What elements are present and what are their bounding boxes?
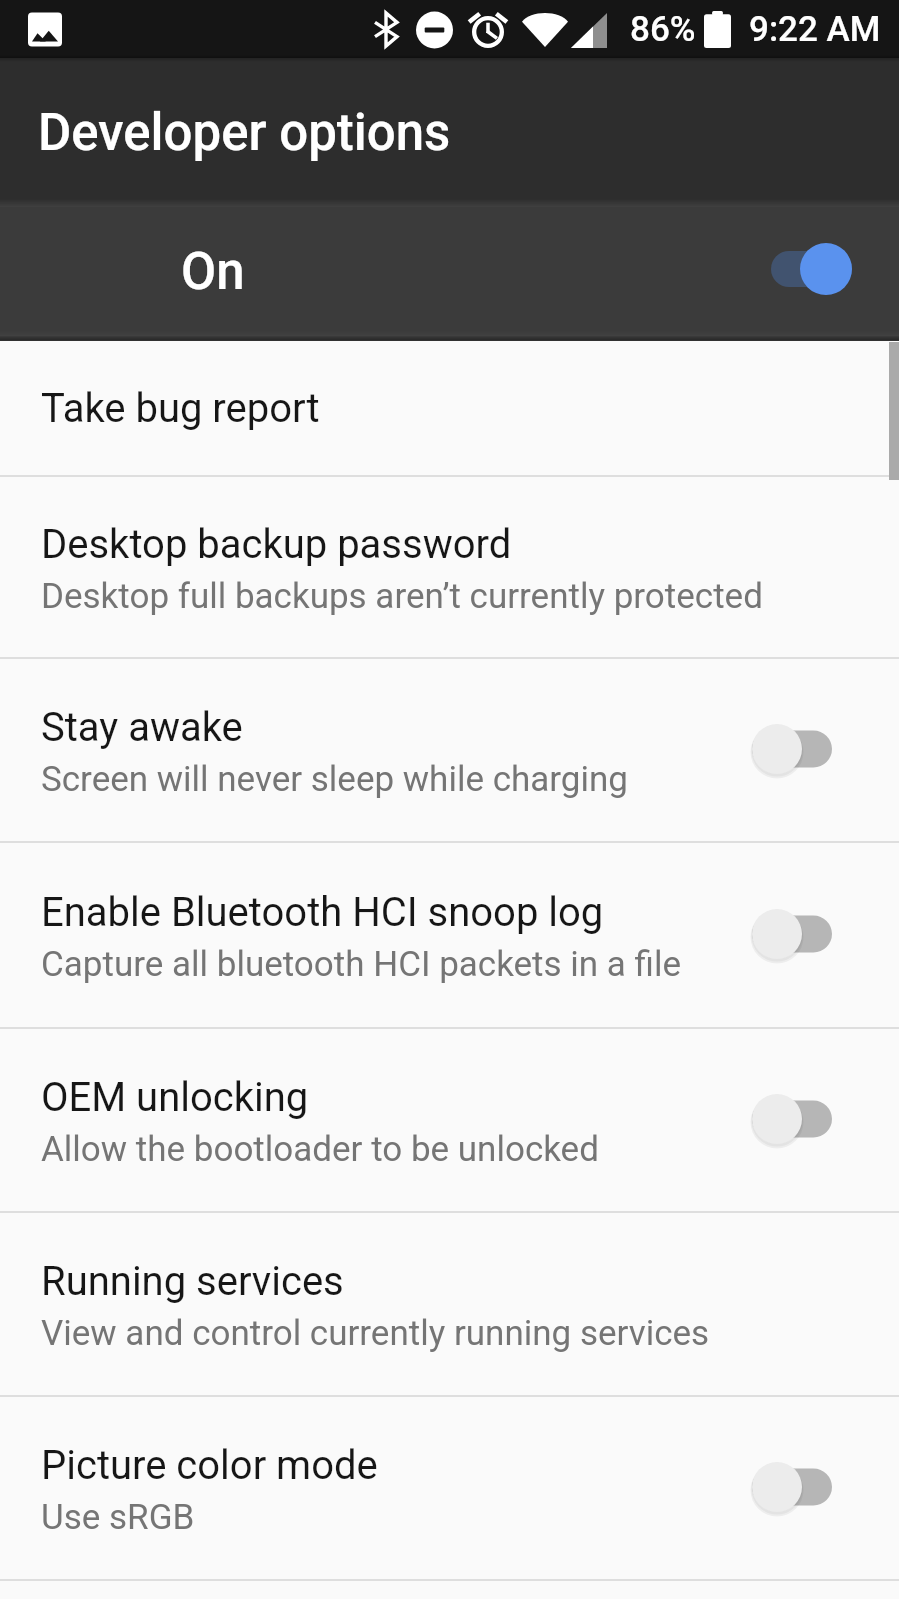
staticText: Developer options: [38, 103, 451, 163]
staticText: Screen will never sleep while charging: [41, 759, 628, 800]
staticText: Enable Bluetooth HCI snoop log: [41, 889, 604, 936]
button[interactable]: Picture color mode toggle: [732, 1459, 832, 1515]
button[interactable]: Enable Bluetooth HCI snoop log toggle: [732, 906, 832, 962]
button[interactable]: Take bug report: [0, 341, 899, 475]
staticText: On: [181, 242, 245, 302]
staticText: Use sRGB: [41, 1497, 195, 1538]
button[interactable]: Stay awake toggle: [732, 721, 832, 777]
button[interactable]: Desktop backup password: [0, 477, 899, 657]
staticText: 86%: [630, 9, 696, 50]
staticText: 9:22 AM: [749, 9, 881, 50]
staticText: Desktop backup password: [41, 521, 512, 568]
staticText: Take bug report: [41, 385, 320, 432]
button[interactable]: Picture color mode: [0, 1397, 899, 1579]
button[interactable]: OEM unlocking: [0, 1029, 899, 1211]
staticText: View and control currently running servi…: [41, 1313, 710, 1354]
staticText: Running services: [41, 1258, 344, 1305]
staticText: Desktop full backups aren’t currently pr…: [41, 576, 763, 617]
staticText: Allow the bootloader to be unlocked: [41, 1129, 599, 1170]
staticText: OEM unlocking: [41, 1074, 309, 1121]
button[interactable]: Running services: [0, 1213, 899, 1395]
staticText: Capture all bluetooth HCI packets in a f…: [41, 944, 682, 985]
button[interactable]: OEM unlocking toggle: [732, 1091, 832, 1147]
button[interactable]: Enable Bluetooth HCI snoop log: [0, 843, 899, 1027]
button[interactable]: Stay awake: [0, 659, 899, 841]
button[interactable]: Developer options on: [752, 239, 852, 299]
button[interactable]: On: [0, 207, 899, 341]
staticText: Picture color mode: [41, 1442, 378, 1489]
staticText: Stay awake: [41, 704, 243, 751]
